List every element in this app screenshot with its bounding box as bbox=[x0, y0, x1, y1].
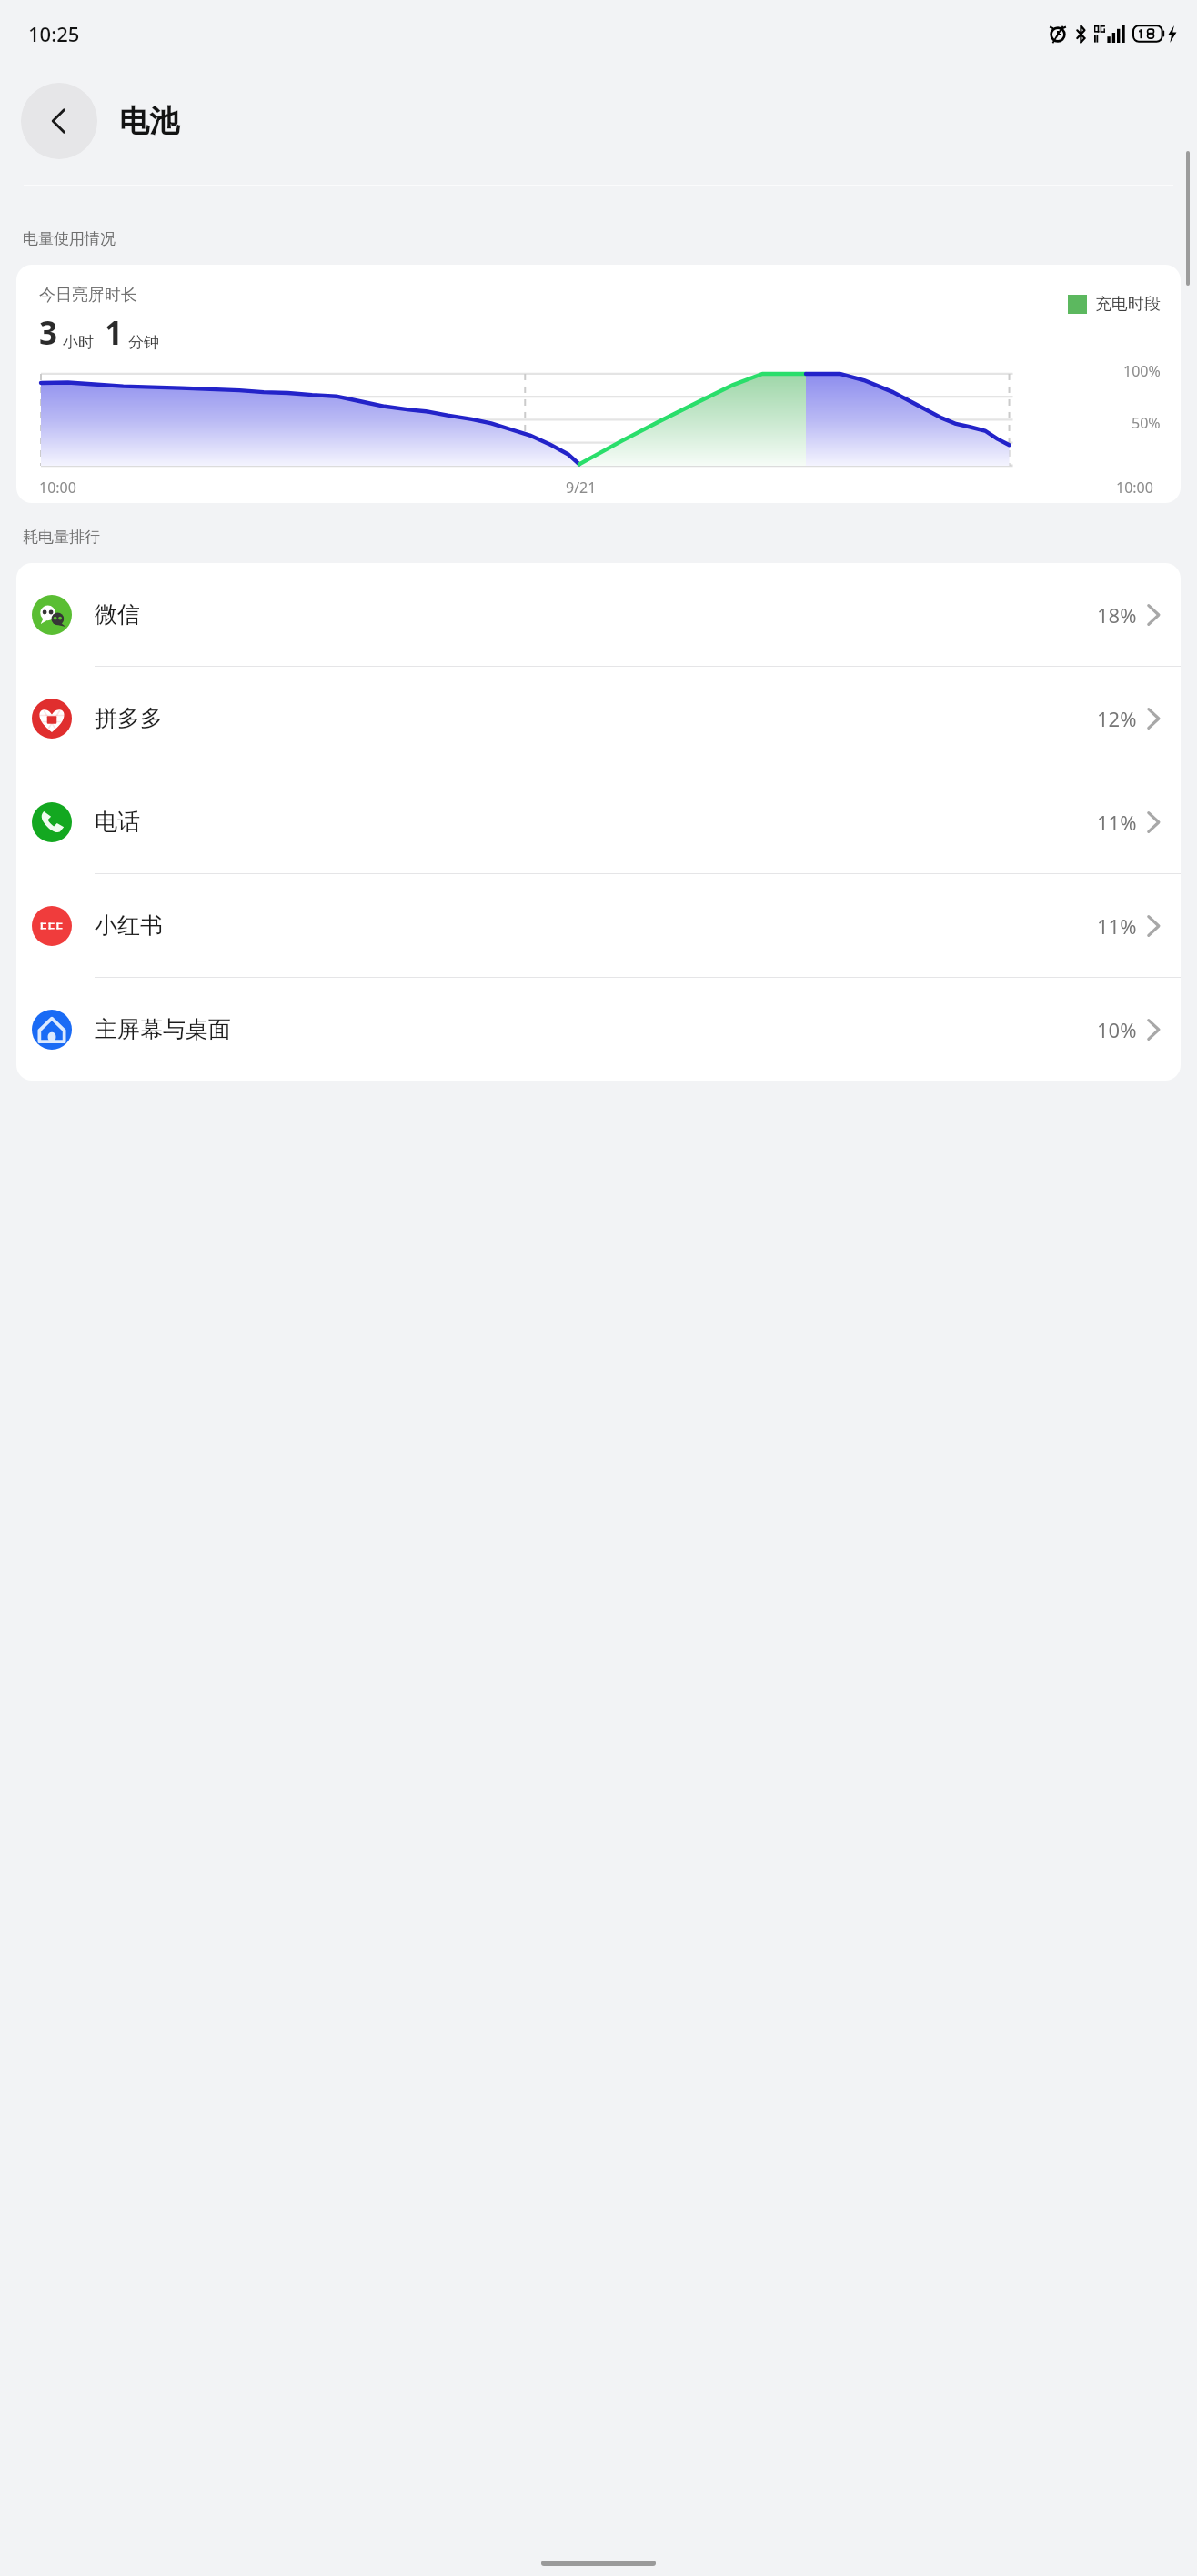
staticText: 10:25 bbox=[28, 20, 80, 47]
staticText: 充电时段 bbox=[1095, 294, 1161, 315]
staticText: 11% bbox=[1097, 809, 1137, 836]
staticText: 分钟 bbox=[128, 333, 159, 352]
staticText: 主屏幕与桌面 bbox=[95, 1015, 231, 1043]
staticText: 小红书 bbox=[95, 911, 163, 940]
staticText: 100% bbox=[1123, 361, 1161, 381]
staticText: 拼多多 bbox=[95, 704, 163, 732]
button[interactable]: 电话 bbox=[16, 770, 1181, 873]
staticText: 微信 bbox=[95, 600, 140, 629]
button[interactable]: 拼多多 bbox=[16, 667, 1181, 770]
button[interactable]: 微信 bbox=[16, 563, 1181, 666]
staticText: 电池 bbox=[119, 102, 179, 140]
staticText: 电话 bbox=[95, 808, 140, 836]
staticText: 今日亮屏时长 bbox=[39, 285, 137, 306]
staticText: 10% bbox=[1097, 1016, 1137, 1043]
staticText: 11% bbox=[1097, 912, 1137, 940]
staticText: 18% bbox=[1097, 601, 1137, 629]
staticText: 50% bbox=[1132, 413, 1161, 433]
staticText: 9/21 bbox=[566, 478, 597, 498]
button[interactable]: 今日亮屏时长 bbox=[16, 265, 1181, 503]
staticText: 10:00 bbox=[39, 478, 76, 498]
staticText: 1 bbox=[105, 311, 124, 355]
staticText: 耗电量排行 bbox=[23, 528, 100, 547]
staticText: 10:00 bbox=[1116, 478, 1153, 498]
button[interactable]: Back bbox=[21, 83, 97, 159]
staticText: 12% bbox=[1097, 705, 1137, 732]
button[interactable]: 小红书 bbox=[16, 874, 1181, 977]
staticText: 3 bbox=[39, 311, 58, 355]
staticText: 小时 bbox=[63, 333, 94, 352]
button[interactable]: 主屏幕与桌面 bbox=[16, 978, 1181, 1081]
staticText: 电量使用情况 bbox=[23, 229, 116, 248]
